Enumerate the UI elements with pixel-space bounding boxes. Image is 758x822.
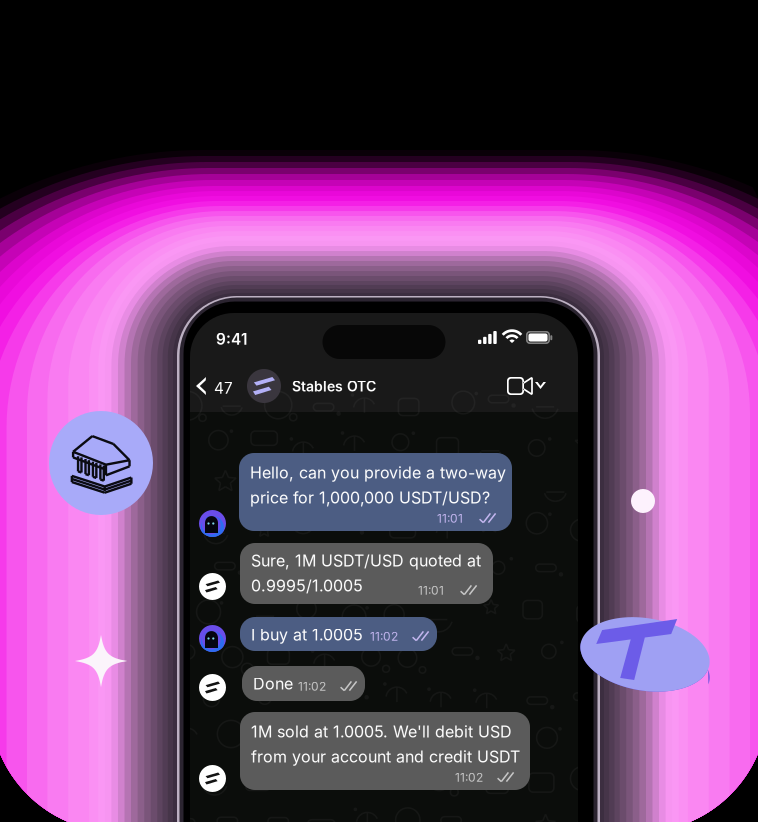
button[interactable]: Stables OTC (246, 365, 446, 407)
staticText: Hello, can you provide a two-way (250, 463, 506, 482)
staticText: 47 (214, 379, 233, 398)
staticText: Stables OTC (292, 378, 376, 395)
staticText: from your account and credit USDT (251, 747, 520, 766)
staticText: 0.9995/1.0005 (251, 576, 363, 595)
staticText: 11:02 (370, 629, 398, 643)
staticText: 11:01 (418, 583, 444, 597)
staticText: Sure, 1M USDT/USD quoted at (251, 551, 481, 570)
staticText: Done (253, 674, 293, 693)
staticText: 9:41 (216, 330, 247, 349)
staticText: I buy at 1.0005 (251, 625, 363, 644)
staticText: price for 1,000,000 USDT/USD? (250, 488, 490, 507)
staticText: 1M sold at 1.0005. We'll debit USD (251, 722, 512, 741)
staticText: 11:02 (298, 679, 326, 693)
staticText: 11:02 (455, 770, 483, 784)
button[interactable]: Video call (500, 366, 562, 406)
staticText: 11:01 (437, 511, 463, 525)
button[interactable]: 47 (190, 366, 244, 406)
